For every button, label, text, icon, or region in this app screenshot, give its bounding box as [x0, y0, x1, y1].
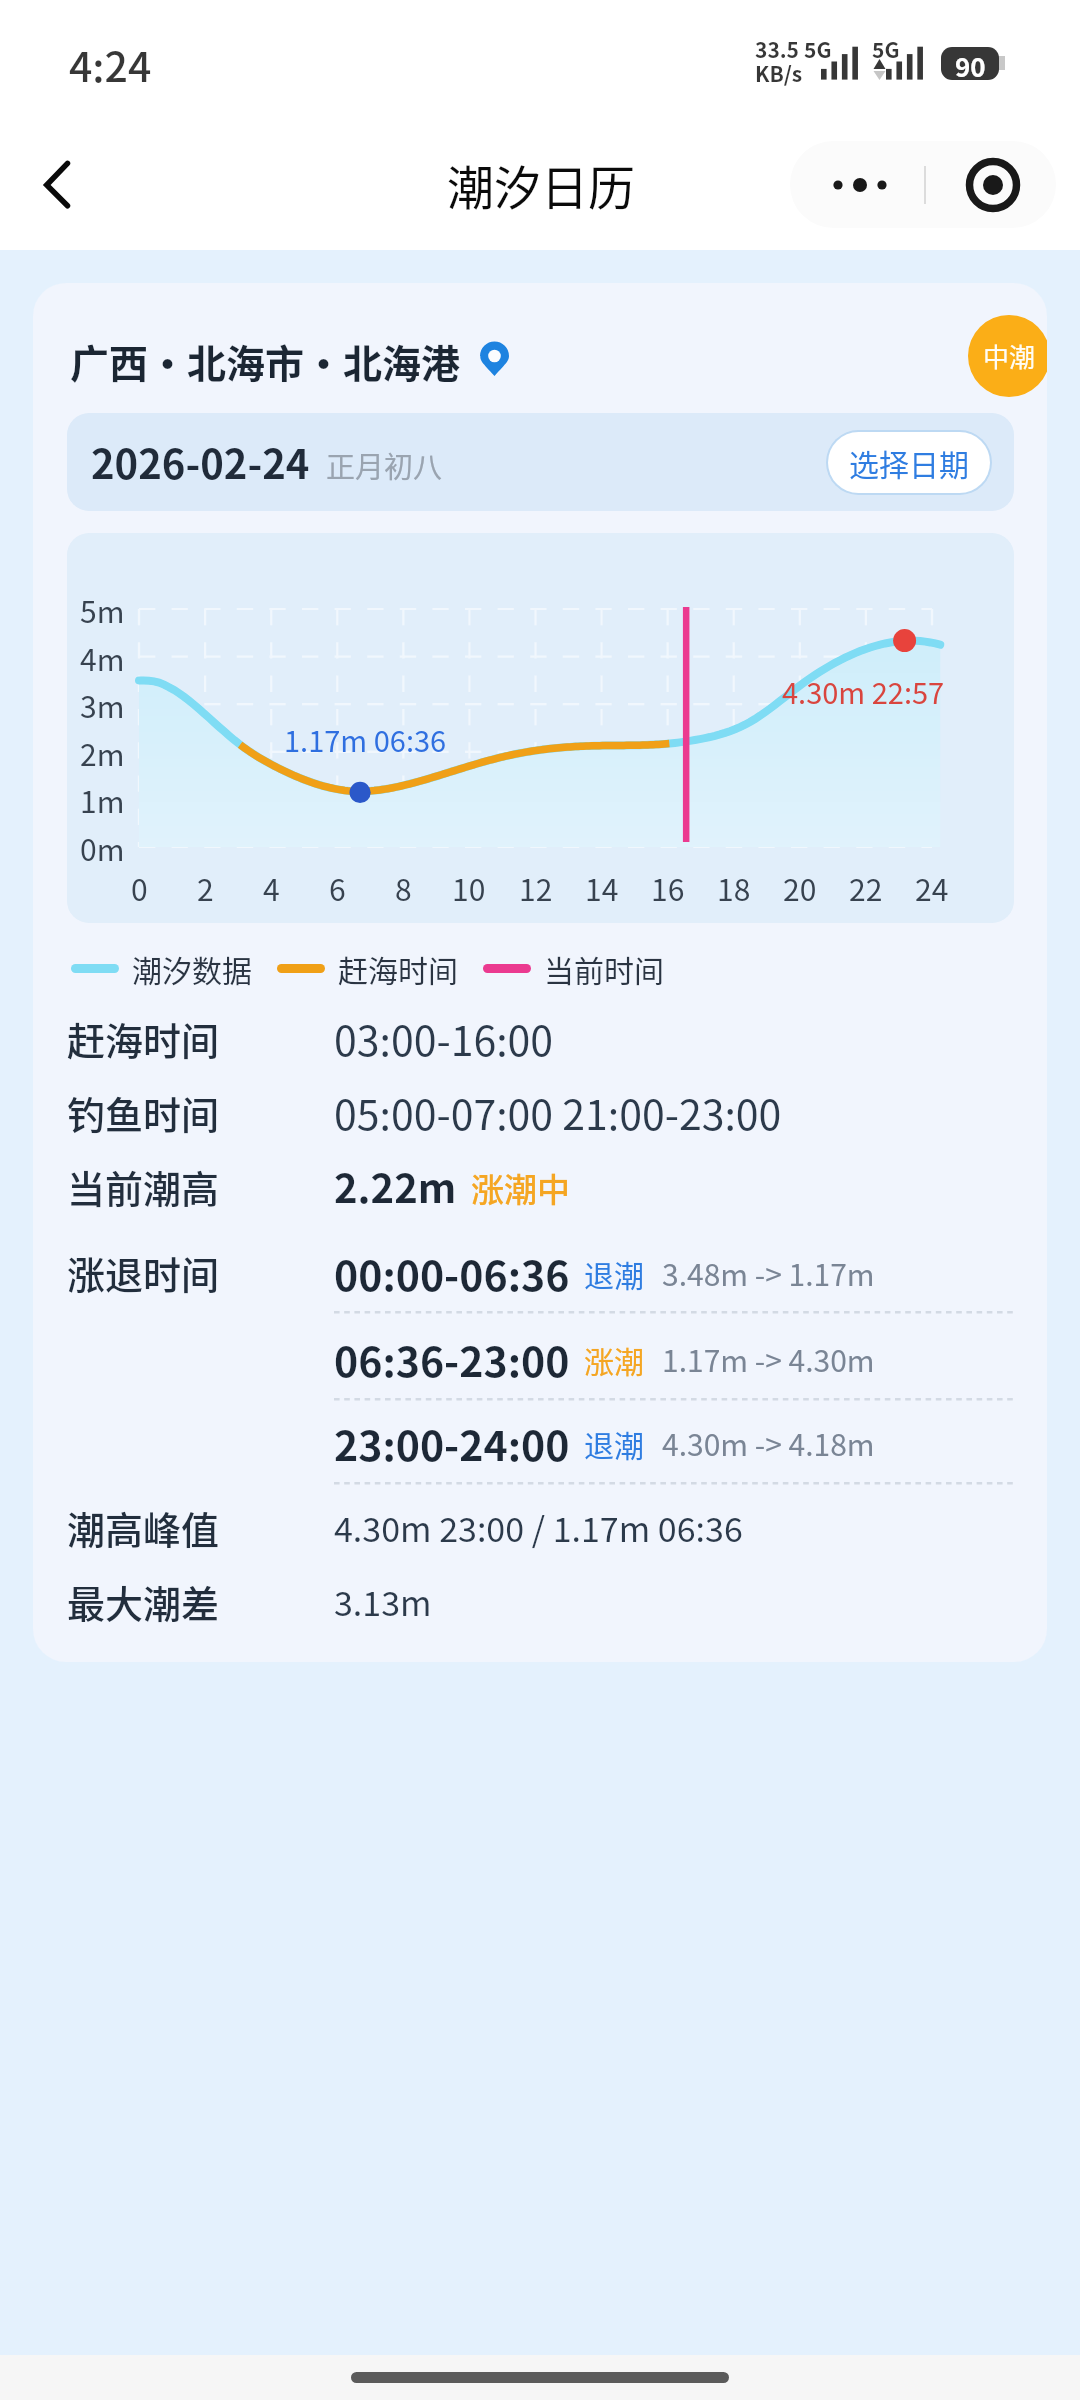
staticText: 03:00-16:00 [334, 1008, 554, 1067]
button[interactable]: 潮汐数据 [71, 947, 252, 990]
staticText: 6 [329, 866, 346, 909]
staticText: 8 [395, 866, 412, 909]
staticText: 00:00-06:36 [334, 1243, 570, 1302]
staticText: 22 [849, 866, 883, 909]
staticText: 赶海时间 [338, 947, 458, 990]
staticText: 1.17m 06:36 [284, 718, 447, 760]
button[interactable]: 广西·北海市·北海港 [70, 333, 490, 389]
staticText: 当前潮高 [67, 1159, 220, 1214]
button[interactable]: Close [923, 141, 1056, 228]
staticText: 退潮 [584, 1252, 644, 1295]
staticText: 正月初八 [326, 444, 443, 486]
staticText: KB/s [755, 58, 803, 88]
staticText: 20 [783, 866, 817, 909]
staticText: 12 [519, 866, 553, 909]
staticText: 5G [872, 34, 900, 64]
staticText: 退潮 [584, 1422, 644, 1465]
staticText: 33.5 [755, 34, 799, 64]
button[interactable]: 赶海时间 [277, 947, 458, 990]
staticText: 1.17m -> 4.30m [662, 1337, 875, 1380]
staticText: 2 [197, 866, 214, 909]
staticText: 选择日期 [849, 441, 969, 484]
staticText: 5G [804, 34, 832, 64]
staticText: 4m [80, 636, 125, 679]
staticText: 4:24 [69, 34, 152, 93]
staticText: 10 [452, 866, 486, 909]
staticText: 3.48m -> 1.17m [662, 1251, 875, 1294]
button[interactable]: 中潮 [968, 315, 1047, 397]
staticText: 4.30m 22:57 [782, 670, 945, 712]
staticText: 涨潮中 [471, 1164, 570, 1212]
staticText: 05:00-07:00 21:00-23:00 [334, 1082, 782, 1141]
staticText: 广西·北海市·北海港 [70, 333, 461, 389]
staticText: 潮汐数据 [132, 947, 252, 990]
staticText: 3.13m [334, 1577, 432, 1626]
staticText: 0 [131, 866, 148, 909]
staticText: 18 [717, 866, 751, 909]
staticText: 16 [651, 866, 685, 909]
staticText: 中潮 [983, 337, 1036, 375]
staticText: 5m [80, 588, 125, 631]
staticText: 4 [263, 866, 280, 909]
staticText: 潮汐日历 [447, 150, 635, 218]
staticText: 2.22m [334, 1157, 457, 1215]
staticText: 赶海时间 [67, 1011, 220, 1066]
staticText: 3m [80, 683, 125, 726]
staticText: 0m [80, 826, 125, 869]
staticText: 90 [955, 47, 986, 80]
staticText: 2026-02-24 [91, 433, 310, 491]
staticText: 涨退时间 [67, 1245, 220, 1300]
button[interactable]: 选择日期 [828, 432, 990, 493]
staticText: 潮高峰值 [67, 1500, 220, 1555]
staticText: 06:36-23:00 [334, 1329, 570, 1388]
staticText: 最大潮差 [67, 1574, 220, 1629]
staticText: 24 [915, 866, 949, 909]
button[interactable]: More [790, 141, 923, 228]
staticText: 4.30m 23:00 / 1.17m 06:36 [334, 1503, 743, 1552]
staticText: 当前时间 [544, 947, 664, 990]
button[interactable]: 2026-02-24 [67, 413, 1014, 511]
staticText: 涨潮 [584, 1338, 644, 1381]
staticText: 钓鱼时间 [67, 1085, 220, 1140]
staticText: 23:00-24:00 [334, 1413, 570, 1472]
staticText: 14 [585, 866, 619, 909]
staticText: 1m [80, 778, 125, 821]
staticText: 4.30m -> 4.18m [662, 1421, 875, 1464]
button[interactable]: Back [20, 148, 94, 222]
button[interactable]: 当前时间 [483, 947, 664, 990]
staticText: 2m [80, 731, 125, 774]
